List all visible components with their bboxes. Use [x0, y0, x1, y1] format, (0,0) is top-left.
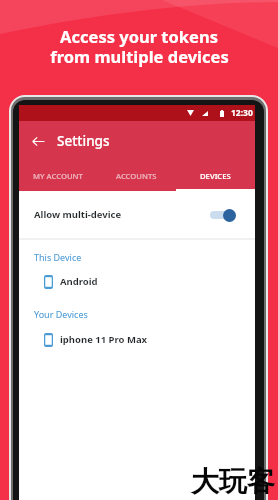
staticText: Your Devices [34, 308, 88, 320]
staticText: 大玩客 [191, 464, 275, 499]
staticText: Access your tokens [60, 25, 218, 47]
button[interactable]: DEVICES [176, 160, 255, 191]
button[interactable]: Android [19, 273, 255, 290]
staticText: from multiple devices [50, 45, 229, 67]
button[interactable]: Allow multi-device [19, 191, 255, 238]
button[interactable]: ACCOUNTS [97, 160, 176, 191]
staticText: This Device [34, 251, 82, 263]
staticText: 12:30 [231, 107, 253, 119]
button[interactable]: Allow multi-device toggle [209, 208, 236, 222]
button[interactable]: MY ACCOUNT [19, 160, 97, 191]
staticText: MY ACCOUNT [33, 171, 83, 181]
staticText: Allow multi-device [34, 208, 122, 221]
staticText: iphone 11 Pro Max [60, 333, 148, 346]
staticText: Android [60, 275, 98, 288]
button[interactable]: iphone 11 Pro Max [19, 331, 255, 348]
staticText: Settings [57, 132, 110, 150]
button[interactable]: Back [26, 129, 50, 153]
staticText: DEVICES [200, 171, 231, 181]
staticText: ACCOUNTS [116, 171, 157, 181]
